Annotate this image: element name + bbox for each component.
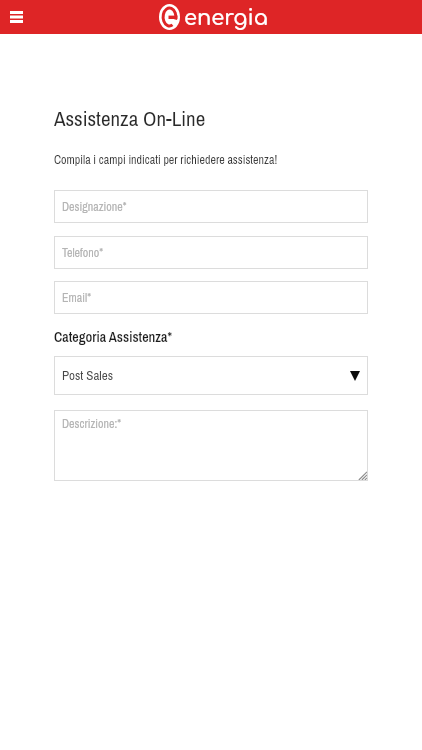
button[interactable]: Email* (54, 281, 368, 314)
staticText: Telefono* (62, 245, 104, 261)
button[interactable]: Post Sales (54, 356, 368, 395)
staticText: Designazione* (62, 199, 127, 215)
staticText: Assistenza On-Line (54, 104, 206, 132)
button[interactable]: Designazione* (54, 190, 368, 223)
button[interactable]: Descrizione:* (54, 410, 368, 481)
staticText: Email* (62, 290, 91, 306)
staticText: Compila i campi indicati per richiedere … (54, 152, 278, 168)
staticText: energia (184, 6, 268, 29)
button[interactable]: Menu (3, 2, 29, 32)
staticText: Descrizione:* (62, 416, 122, 432)
staticText: Post Sales (62, 367, 113, 385)
button[interactable]: Telefono* (54, 236, 368, 269)
staticText: Categoria Assistenza* (54, 328, 172, 347)
